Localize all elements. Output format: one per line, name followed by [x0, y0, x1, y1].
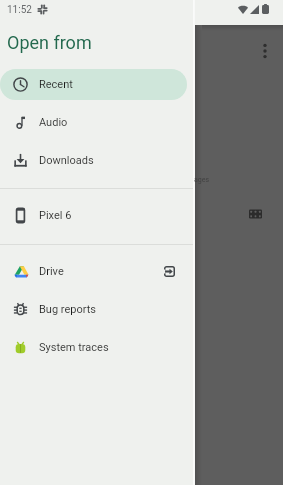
staticText: Drive: [39, 265, 64, 278]
staticText: Recent: [39, 78, 73, 91]
staticText: Pixel 6: [39, 209, 72, 222]
button[interactable]: System traces: [0, 332, 193, 363]
button[interactable]: Pixel 6: [0, 200, 193, 231]
staticText: Open from: [7, 32, 92, 53]
staticText: Bug reports: [39, 303, 97, 316]
button[interactable]: Downloads: [0, 145, 193, 176]
button[interactable]: More options: [255, 41, 275, 61]
button[interactable]: Bug reports: [0, 294, 193, 325]
staticText: ages: [194, 176, 210, 184]
button[interactable]: Grid view: [249, 208, 262, 220]
button[interactable]: Recent: [0, 69, 193, 100]
button[interactable]: Audio: [0, 107, 193, 138]
staticText: Audio: [39, 116, 68, 129]
staticText: 11:52: [7, 4, 32, 16]
button[interactable]: Drive: [0, 256, 193, 287]
staticText: Downloads: [39, 154, 94, 167]
staticText: System traces: [39, 341, 109, 354]
